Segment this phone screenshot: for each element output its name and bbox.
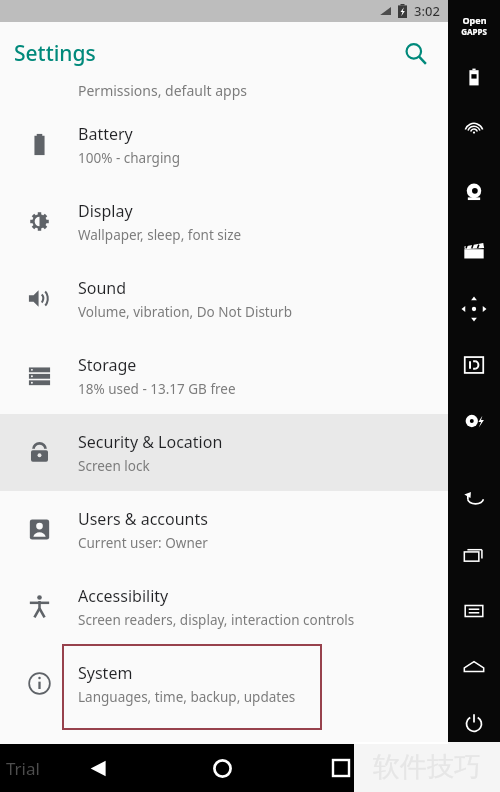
button[interactable]: Record (457, 404, 491, 438)
button[interactable]: Power (457, 706, 491, 740)
button[interactable]: Home (457, 650, 491, 684)
staticText: Screen readers, display, interaction con… (78, 611, 355, 629)
staticText: Wallpaper, sleep, font size (78, 226, 242, 244)
staticText: 3:02 (414, 2, 440, 20)
button[interactable]: Recent apps (320, 747, 362, 789)
staticText: 18% used - 13.17 GB free (78, 380, 236, 398)
staticText: Accessibility (78, 585, 169, 607)
button[interactable]: Battery (0, 106, 448, 183)
staticText: Trial (6, 757, 40, 780)
button[interactable]: Security & Location (0, 414, 448, 491)
staticText: Volume, vibration, Do Not Disturb (78, 303, 292, 321)
button[interactable]: Back (77, 747, 119, 789)
staticText: Users & accounts (78, 508, 208, 530)
button[interactable]: Home (201, 747, 243, 789)
staticText: Permissions, default apps (78, 81, 248, 100)
staticText: 软件技巧 (373, 750, 481, 784)
staticText: Battery (78, 123, 133, 145)
button[interactable]: Display (0, 183, 448, 260)
staticText: Settings (14, 39, 96, 68)
button[interactable]: GPS (457, 120, 491, 154)
button[interactable]: Menu (457, 594, 491, 628)
button[interactable]: Storage (0, 337, 448, 414)
staticText: Languages, time, backup, updates (78, 688, 296, 706)
staticText: Sound (78, 277, 127, 299)
staticText: Open (462, 14, 487, 26)
button[interactable]: Sound (0, 260, 448, 337)
staticText: Current user: Owner (78, 534, 208, 552)
button[interactable]: Search (394, 32, 438, 76)
staticText: 100% - charging (78, 149, 181, 167)
button[interactable]: System (0, 645, 448, 722)
button[interactable]: Users & accounts (0, 491, 448, 568)
button[interactable]: Recent apps (457, 538, 491, 572)
staticText: Display (78, 200, 133, 222)
button[interactable]: Battery (457, 60, 491, 94)
button[interactable]: Back (457, 482, 491, 516)
button[interactable]: Open GAPPS (451, 12, 497, 38)
staticText: Screen lock (78, 457, 150, 475)
button[interactable]: Accessibility (0, 568, 448, 645)
staticText: GAPPS (461, 26, 487, 37)
button[interactable]: Camera (457, 176, 491, 210)
staticText: Storage (78, 354, 137, 376)
staticText: Security & Location (78, 431, 223, 453)
button[interactable]: Video recorder (457, 234, 491, 268)
button[interactable]: D-pad (457, 292, 491, 326)
staticText: System (78, 662, 133, 684)
button[interactable]: Device ID (457, 348, 491, 382)
